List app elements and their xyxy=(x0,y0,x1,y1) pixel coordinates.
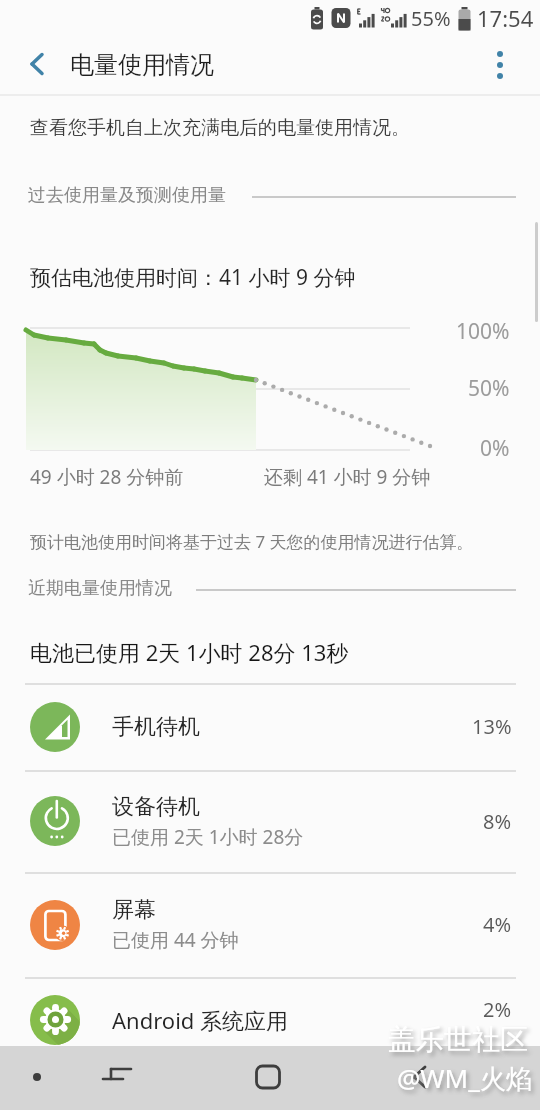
staticText: 预估电池使用时间：41 小时 9 分钟 xyxy=(30,263,356,292)
staticText: 查看您手机自上次充满电后的电量使用情况。 xyxy=(30,116,410,140)
staticText: 49 小时 28 分钟前 xyxy=(30,464,184,490)
staticText: @WM_火焰 xyxy=(397,1060,532,1096)
button[interactable] xyxy=(13,1053,61,1101)
staticText: 已使用 44 分钟 xyxy=(112,927,239,953)
staticText: Android 系统应用 xyxy=(112,1005,289,1035)
staticText: 已使用 2天 1小时 28分 xyxy=(112,824,304,850)
button[interactable] xyxy=(93,1053,141,1101)
staticText: 100% xyxy=(456,317,510,346)
staticText: 手机待机 xyxy=(112,713,200,741)
staticText: 电量使用情况 xyxy=(70,50,214,80)
button[interactable]: Android 系统应用 xyxy=(0,977,540,1062)
staticText: 盖乐世社区 xyxy=(388,1022,528,1057)
button[interactable] xyxy=(244,1053,292,1101)
staticText: 13% xyxy=(472,713,512,740)
staticText: 预计电池使用时间将基于过去 7 天您的使用情况进行估算。 xyxy=(30,530,474,553)
button[interactable] xyxy=(14,41,62,89)
staticText: 近期电量使用情况 xyxy=(28,577,172,600)
staticText: 0% xyxy=(480,434,510,463)
button[interactable]: 手机待机 xyxy=(0,683,540,770)
staticText: 过去使用量及预测使用量 xyxy=(28,184,226,207)
staticText: 50% xyxy=(468,374,510,403)
staticText: 8% xyxy=(483,808,512,835)
staticText: 设备待机 xyxy=(112,793,200,821)
staticText: 电池已使用 2天 1小时 28分 13秒 xyxy=(30,637,349,667)
staticText: 还剩 41 小时 9 分钟 xyxy=(264,464,431,490)
button[interactable]: 屏幕 xyxy=(0,872,540,977)
staticText: 屏幕 xyxy=(112,896,156,924)
button[interactable]: 设备待机 xyxy=(0,770,540,872)
staticText: 55% xyxy=(411,5,451,32)
staticText: 4% xyxy=(483,911,512,938)
button[interactable] xyxy=(396,1053,444,1101)
button[interactable] xyxy=(478,43,522,87)
staticText: 17:54 xyxy=(477,3,534,33)
staticText: 2% xyxy=(483,996,512,1023)
